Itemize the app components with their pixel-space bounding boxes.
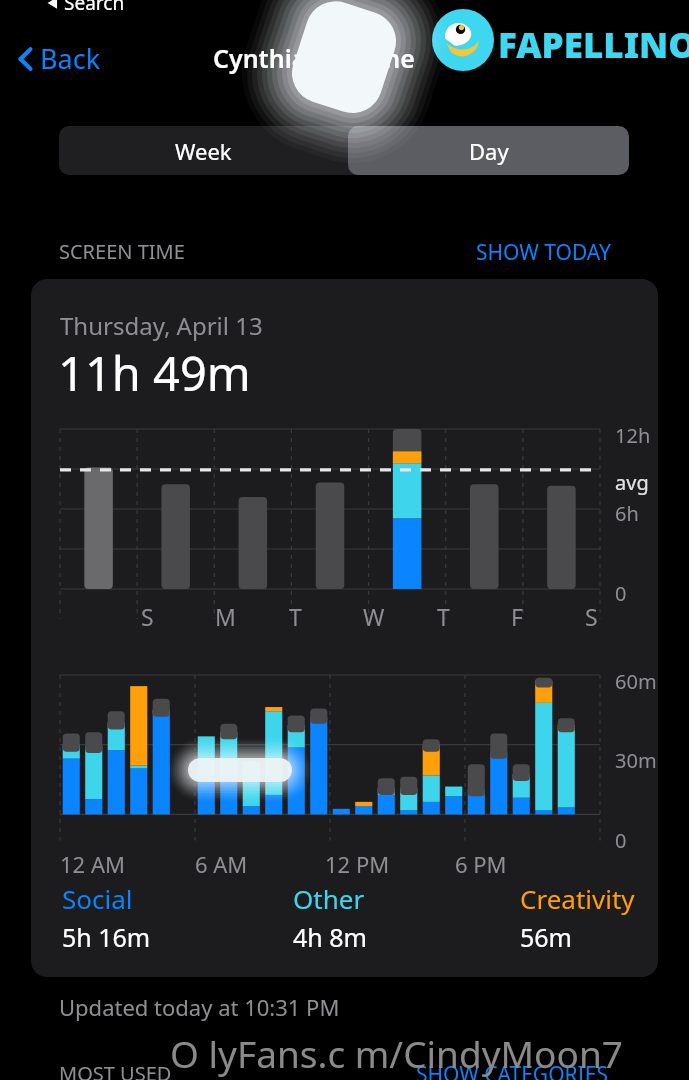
button[interactable]: SHOW TODAY — [476, 238, 611, 267]
staticText: Creativity — [520, 881, 635, 916]
staticText: FAPELLINO — [498, 21, 689, 69]
staticText: T — [289, 601, 302, 632]
staticText: Week — [175, 136, 232, 166]
button[interactable]: Other — [293, 881, 367, 954]
staticText: Social — [62, 881, 133, 916]
button[interactable]: Thursday, April 13 — [31, 279, 658, 977]
staticText: 56m — [520, 920, 572, 954]
button[interactable]: Social — [62, 881, 151, 954]
staticText: 6 PM — [455, 849, 507, 879]
staticText: avg — [615, 469, 649, 496]
staticText: Search — [64, 0, 125, 16]
staticText: Day — [469, 136, 509, 166]
staticText: Cynthia's iPhone — [213, 41, 415, 75]
staticText: 4h 8m — [293, 920, 367, 954]
staticText: 60m — [615, 668, 657, 695]
button[interactable]: Search — [46, 0, 125, 16]
staticText: 11h 49m — [58, 341, 251, 405]
staticText: MOST USED — [59, 1060, 172, 1080]
staticText: Thursday, April 13 — [60, 309, 263, 342]
staticText: 30m — [615, 747, 657, 774]
button[interactable]: SHOW CATEGORIES — [416, 1060, 608, 1080]
staticText: O lyFans.c m/CindyMoon7 — [170, 1028, 623, 1078]
staticText: 0 — [615, 827, 627, 854]
button[interactable]: Creativity — [520, 881, 635, 954]
staticText: F — [511, 601, 523, 632]
staticText: 0 — [615, 580, 627, 607]
staticText: 5h 16m — [62, 920, 151, 954]
staticText: 6 AM — [195, 849, 248, 879]
staticText: SHOW TODAY — [476, 238, 611, 267]
staticText: Updated today at 10:31 PM — [59, 992, 340, 1022]
staticText: M — [215, 601, 236, 632]
staticText: T — [437, 601, 450, 632]
staticText: Back — [40, 40, 101, 77]
staticText: W — [363, 601, 385, 632]
staticText: SCREEN TIME — [59, 238, 185, 265]
staticText: 6h — [615, 500, 639, 527]
button[interactable]: Day — [348, 126, 629, 175]
button[interactable]: Back — [18, 40, 101, 77]
button[interactable]: Week — [59, 126, 348, 175]
staticText: SHOW CATEGORIES — [416, 1060, 608, 1080]
staticText: 12 AM — [60, 849, 125, 879]
staticText: S — [585, 601, 598, 632]
staticText: 12h — [615, 422, 651, 449]
staticText: Other — [293, 881, 365, 916]
staticText: S — [141, 601, 154, 632]
staticText: 12 PM — [325, 849, 390, 879]
